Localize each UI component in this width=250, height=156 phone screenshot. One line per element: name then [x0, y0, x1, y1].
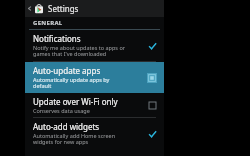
staticText: Notifications	[33, 33, 81, 44]
staticText: Notify me about updates to apps or games…	[33, 44, 125, 58]
staticText: Auto-add widgets	[33, 121, 100, 132]
staticText: Automatically update apps by default	[33, 76, 110, 90]
button[interactable]: Navigate up	[25, 0, 33, 17]
button[interactable]: Auto-add widgets	[25, 118, 164, 149]
staticText: GENERAL	[33, 19, 63, 27]
button[interactable]: Update over Wi-Fi only	[25, 93, 164, 117]
button[interactable]: Auto-update apps	[25, 62, 164, 93]
button[interactable]: Notifications	[25, 30, 164, 61]
staticText: Automatically add Home screen widgets fo…	[33, 132, 116, 146]
staticText: Settings	[48, 3, 79, 14]
staticText: Auto-update apps	[33, 65, 101, 76]
staticText: Update over Wi-Fi only	[33, 96, 118, 107]
staticText: Conserves data usage	[33, 107, 90, 114]
